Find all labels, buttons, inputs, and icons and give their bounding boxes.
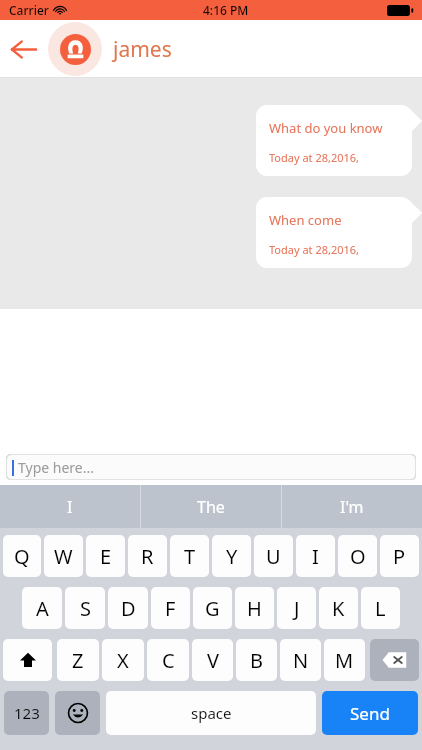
staticText: G [205, 595, 220, 622]
staticText: What do you know [269, 119, 383, 137]
staticText: S [80, 595, 91, 622]
button[interactable]: B [236, 639, 277, 681]
staticText: O [350, 543, 366, 570]
staticText: Q [14, 543, 30, 570]
staticText: james [113, 35, 172, 64]
staticText: W [54, 543, 73, 570]
button[interactable]: H [235, 587, 274, 629]
staticText: H [247, 595, 262, 622]
button[interactable]: When come [256, 197, 422, 268]
button[interactable]: Back [0, 26, 46, 72]
button[interactable]: O [338, 535, 377, 577]
staticText: X [117, 647, 129, 674]
staticText: space [191, 703, 232, 723]
button[interactable]: Backspace [370, 639, 419, 681]
button[interactable]: Q [3, 535, 41, 577]
staticText: B [250, 647, 263, 674]
button[interactable]: Profile photo [48, 22, 102, 76]
button[interactable]: U [254, 535, 293, 577]
button[interactable]: R [128, 535, 167, 577]
staticText: Send [350, 702, 390, 725]
staticText: E [100, 543, 112, 570]
button[interactable]: G [193, 587, 232, 629]
button[interactable]: Emoji keyboard [55, 691, 100, 735]
button[interactable]: Y [212, 535, 251, 577]
button[interactable]: M [324, 639, 365, 681]
button[interactable]: P [380, 535, 419, 577]
staticText: P [393, 543, 406, 570]
button[interactable]: S [65, 587, 105, 629]
button[interactable]: W [44, 535, 83, 577]
button[interactable]: Shift [3, 639, 52, 681]
button[interactable]: Send [322, 691, 418, 735]
button[interactable]: Z [57, 639, 99, 681]
staticText: 4:16 PM [203, 2, 249, 18]
staticText: I [312, 543, 319, 570]
button[interactable]: Type here... [6, 454, 416, 480]
button[interactable]: I [296, 535, 335, 577]
button[interactable]: K [319, 587, 358, 629]
staticText: F [165, 595, 176, 622]
button[interactable]: E [86, 535, 125, 577]
staticText: The [197, 496, 225, 518]
staticText: C [162, 647, 175, 674]
staticText: K [332, 595, 345, 622]
staticText: N [293, 647, 309, 674]
staticText: R [141, 543, 154, 570]
staticText: I'm [340, 496, 364, 518]
staticText: 123 [14, 703, 40, 723]
staticText: M [335, 647, 354, 674]
button[interactable]: J [277, 587, 316, 629]
staticText: Z [72, 647, 84, 674]
staticText: Y [226, 543, 238, 570]
staticText: U [266, 543, 281, 570]
staticText: Carrier [9, 2, 49, 18]
button[interactable]: I'm [282, 485, 422, 528]
button[interactable]: D [108, 587, 148, 629]
button[interactable]: A [22, 587, 62, 629]
button[interactable]: L [361, 587, 400, 629]
button[interactable]: The [141, 485, 281, 528]
button[interactable]: I [0, 485, 140, 528]
button[interactable]: V [192, 639, 233, 681]
staticText: A [36, 595, 49, 622]
staticText: Today at 28,2016, [269, 242, 360, 257]
button[interactable]: space [106, 691, 316, 735]
button[interactable]: N [280, 639, 321, 681]
staticText: D [121, 595, 136, 622]
staticText: When come [269, 211, 342, 229]
staticText: L [375, 595, 386, 622]
button[interactable]: T [170, 535, 209, 577]
button[interactable]: 123 [4, 691, 49, 735]
button[interactable]: X [102, 639, 144, 681]
staticText: V [207, 647, 219, 674]
staticText: Today at 28,2016, [269, 150, 360, 165]
staticText: J [294, 595, 300, 622]
staticText: T [184, 543, 196, 570]
button[interactable]: C [147, 639, 189, 681]
staticText: Type here... [18, 458, 94, 477]
button[interactable]: What do you know [256, 105, 422, 176]
button[interactable]: F [151, 587, 190, 629]
staticText: I [67, 496, 73, 518]
